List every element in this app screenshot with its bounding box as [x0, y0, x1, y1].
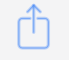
button[interactable]: Share	[0, 0, 69, 60]
